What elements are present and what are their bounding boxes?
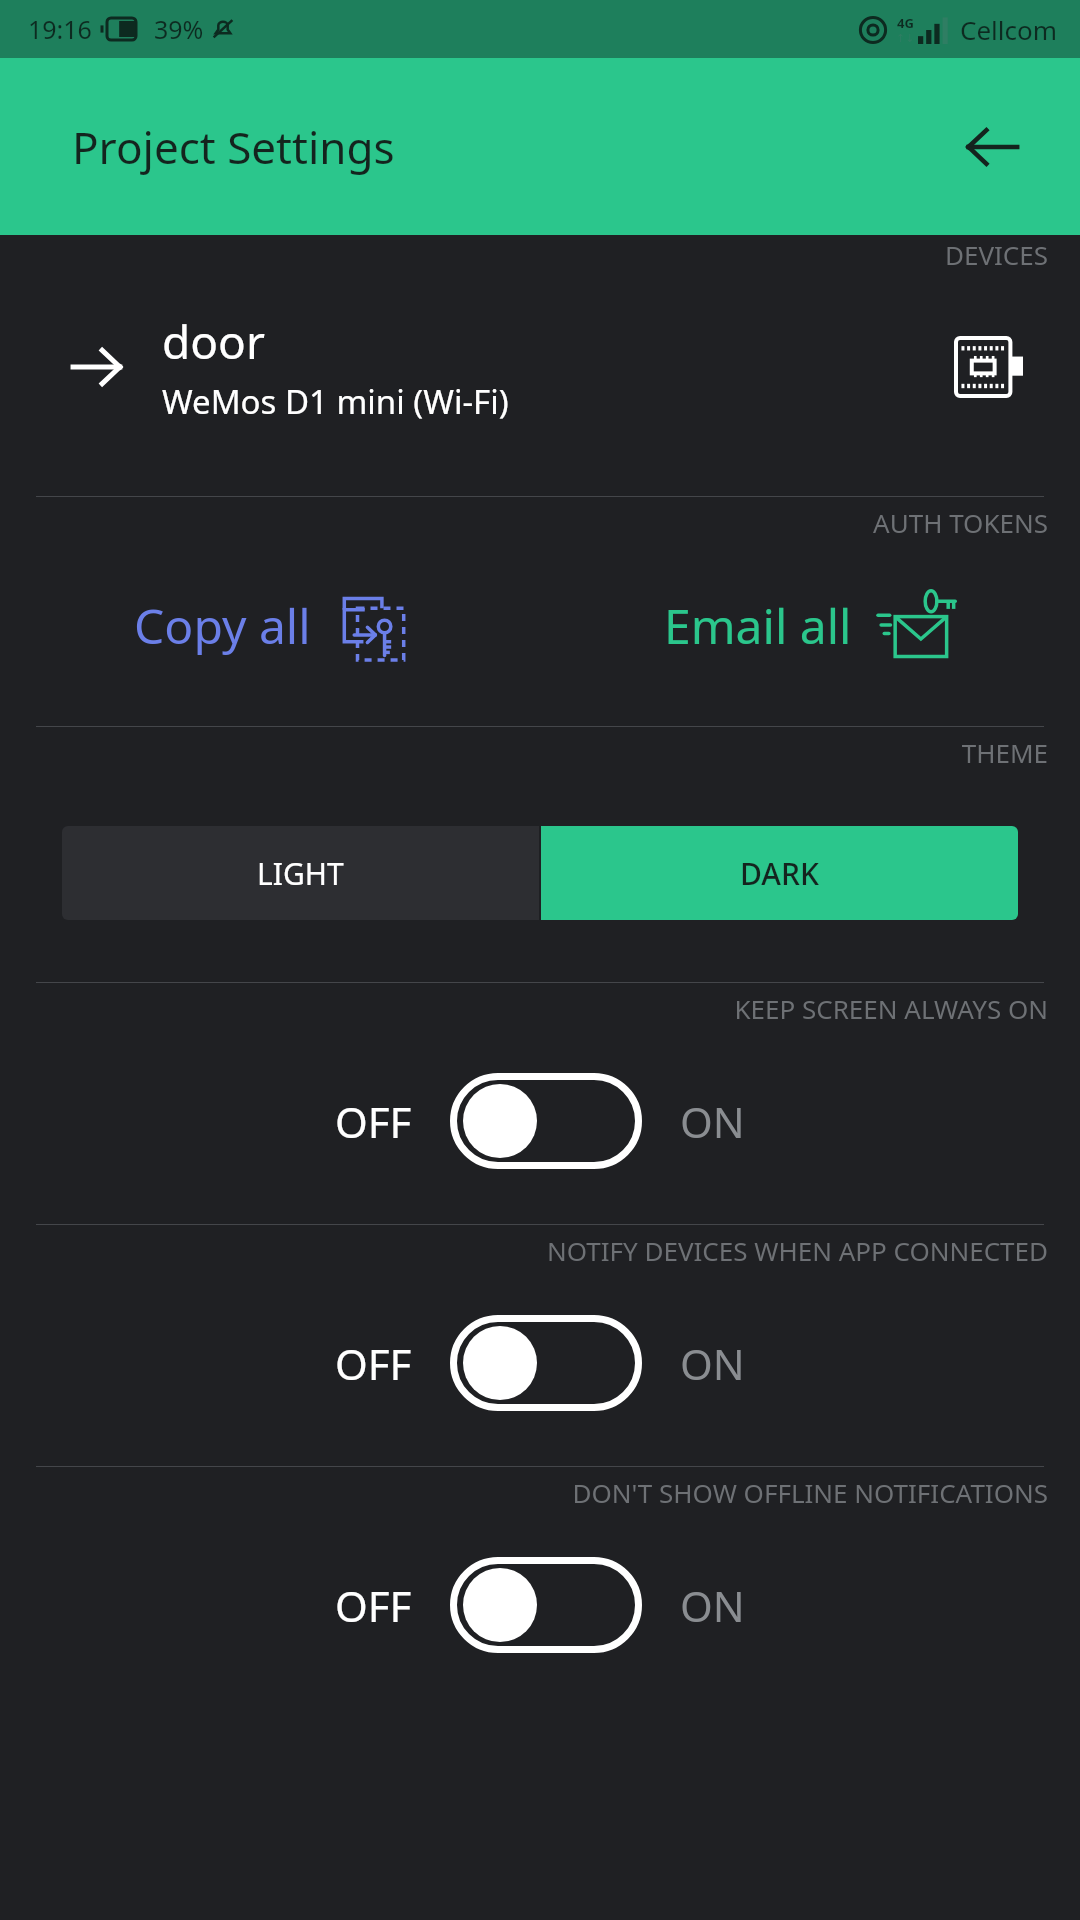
staticText: DARK bbox=[740, 853, 819, 894]
staticText: AUTH TOKENS bbox=[0, 505, 1048, 540]
staticText: DON'T SHOW OFFLINE NOTIFICATIONS bbox=[0, 1475, 1048, 1510]
staticText: Email all bbox=[664, 593, 852, 658]
staticText: 39% bbox=[154, 12, 204, 46]
button[interactable]: LIGHT bbox=[62, 826, 539, 920]
staticText: OFF bbox=[335, 1093, 412, 1150]
staticText: KEEP SCREEN ALWAYS ON bbox=[0, 991, 1048, 1026]
button[interactable]: Email all bbox=[540, 570, 1080, 680]
staticText: 4G bbox=[897, 14, 914, 32]
button[interactable]: Toggle DON'T SHOW OFFLINE NOTIFICATIONS bbox=[450, 1557, 642, 1653]
staticText: ON bbox=[680, 1577, 745, 1634]
button[interactable]: Copy all bbox=[0, 570, 540, 680]
staticText: 19:16 bbox=[28, 12, 92, 46]
staticText: Copy all bbox=[134, 593, 311, 658]
button[interactable]: Back bbox=[954, 109, 1030, 185]
button[interactable]: Toggle NOTIFY DEVICES WHEN APP CONNECTED bbox=[450, 1315, 642, 1411]
button[interactable]: Toggle KEEP SCREEN ALWAYS ON bbox=[450, 1073, 642, 1169]
staticText: ON bbox=[680, 1093, 745, 1150]
staticText: ON bbox=[680, 1335, 745, 1392]
staticText: Cellcom bbox=[960, 12, 1058, 47]
staticText: LIGHT bbox=[257, 853, 344, 894]
staticText: OFF bbox=[335, 1335, 412, 1392]
button[interactable]: DARK bbox=[541, 826, 1018, 920]
staticText: NOTIFY DEVICES WHEN APP CONNECTED bbox=[0, 1233, 1048, 1268]
staticText: door bbox=[162, 310, 265, 373]
staticText: WeMos D1 mini (Wi-Fi) bbox=[162, 379, 509, 424]
staticText: ↑↓ bbox=[896, 32, 915, 45]
staticText: Project Settings bbox=[72, 117, 395, 177]
button[interactable]: door bbox=[0, 272, 1080, 462]
staticText: DEVICES bbox=[0, 237, 1048, 272]
staticText: OFF bbox=[335, 1577, 412, 1634]
staticText: THEME bbox=[0, 735, 1048, 770]
